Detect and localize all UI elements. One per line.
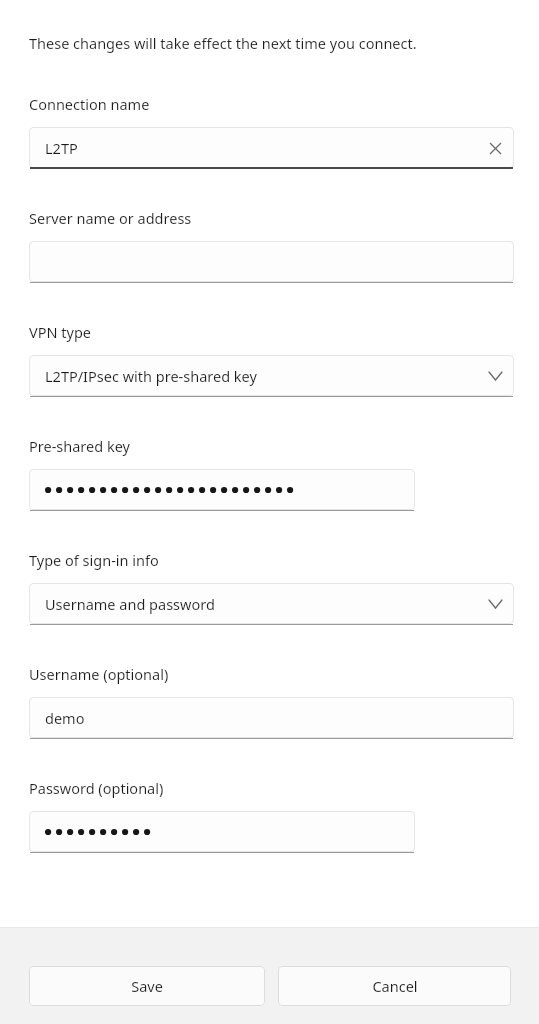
- button[interactable]: L2TP/IPsec with pre-shared key: [29, 355, 514, 397]
- button[interactable]: Clear connection name: [476, 129, 514, 167]
- other: Expand: [476, 357, 514, 395]
- button[interactable]: [29, 469, 415, 511]
- other: Expand: [476, 585, 514, 623]
- staticText: Username and password: [45, 594, 476, 614]
- staticText: These changes will take effect the next …: [29, 33, 417, 53]
- button[interactable]: demo: [29, 697, 514, 739]
- staticText: L2TP: [45, 138, 476, 158]
- staticText: demo: [45, 708, 514, 728]
- staticText: Username (optional): [29, 664, 169, 684]
- staticText: Password (optional): [29, 778, 164, 798]
- button[interactable]: Save: [29, 966, 265, 1006]
- staticText: Pre-shared key: [29, 436, 130, 456]
- staticText: L2TP/IPsec with pre-shared key: [45, 366, 476, 386]
- button[interactable]: Cancel: [278, 966, 511, 1006]
- staticText: Cancel: [372, 976, 418, 996]
- staticText: Save: [131, 976, 163, 996]
- button[interactable]: [29, 811, 415, 853]
- button[interactable]: [29, 241, 514, 283]
- staticText: Type of sign-in info: [29, 550, 159, 570]
- staticText: Server name or address: [29, 208, 192, 228]
- staticText: VPN type: [29, 322, 91, 342]
- button[interactable]: L2TP: [29, 127, 514, 169]
- button[interactable]: Username and password: [29, 583, 514, 625]
- staticText: Connection name: [29, 94, 150, 114]
